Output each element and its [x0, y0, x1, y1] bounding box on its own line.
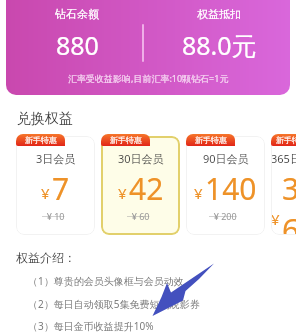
- button[interactable]: 90日会员: [186, 136, 265, 235]
- staticText: 钻石余额: [55, 7, 99, 21]
- staticText: 88.0元: [182, 28, 257, 62]
- staticText: （2）每日自动领取5集免费短剧观影券: [28, 297, 200, 311]
- staticText: 365: [282, 168, 296, 235]
- staticText: ¥: [118, 183, 127, 203]
- staticText: 90日会员: [203, 151, 249, 166]
- staticText: 140: [205, 168, 257, 209]
- staticText: 新手特惠: [276, 135, 296, 145]
- staticText: 新手特惠: [195, 135, 227, 145]
- staticText: ¥ 200: [209, 210, 242, 222]
- staticText: 权益介绍：: [16, 250, 76, 265]
- staticText: 权益抵扣: [197, 7, 241, 21]
- staticText: （1）尊贵的会员头像框与会员动效: [28, 274, 184, 288]
- staticText: ¥: [271, 209, 280, 229]
- staticText: 365日会员: [271, 151, 296, 166]
- staticText: 新手特惠: [25, 135, 57, 145]
- button[interactable]: 365日会员: [271, 136, 296, 235]
- staticText: 兑换权益: [17, 110, 73, 128]
- staticText: 7: [52, 168, 70, 209]
- staticText: 880: [56, 28, 99, 62]
- staticText: 汇率受收益影响,目前汇率:10颗钻石=1元: [68, 72, 229, 84]
- staticText: ¥: [194, 183, 203, 203]
- staticText: ¥ 10: [42, 210, 70, 222]
- button[interactable]: 30日会员: [101, 136, 180, 235]
- staticText: （3）每日金币收益提升10%: [28, 319, 154, 333]
- staticText: 30日会员: [118, 151, 164, 166]
- button[interactable]: 3日会员: [16, 136, 95, 235]
- staticText: ¥: [41, 183, 50, 203]
- staticText: 新手特惠: [110, 135, 142, 145]
- staticText: 42: [129, 168, 164, 209]
- staticText: 3日会员: [36, 151, 76, 166]
- staticText: ¥ 60: [127, 210, 155, 222]
